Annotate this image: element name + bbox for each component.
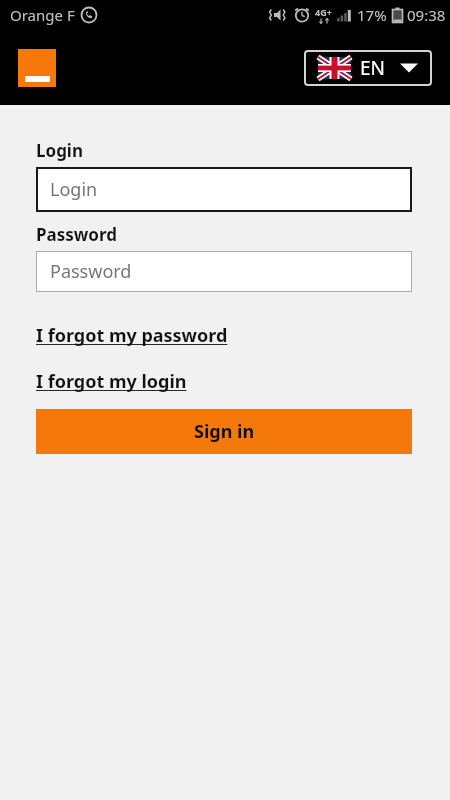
button[interactable]: EN bbox=[304, 50, 432, 86]
staticText: Password bbox=[36, 223, 117, 246]
button[interactable]: Password bbox=[36, 251, 412, 292]
staticText: Orange F bbox=[10, 5, 75, 25]
staticText: Login bbox=[50, 177, 98, 202]
staticText: EN bbox=[360, 55, 386, 81]
staticText: 09:38 bbox=[407, 5, 446, 25]
button[interactable]: I forgot my login bbox=[36, 369, 187, 394]
staticText: Sign in bbox=[194, 419, 255, 444]
staticText: 4G+ bbox=[315, 6, 332, 18]
button[interactable]: Sign in bbox=[36, 409, 412, 454]
staticText: 17% bbox=[357, 5, 387, 25]
staticText: Login bbox=[36, 139, 84, 162]
button[interactable]: Login bbox=[36, 167, 412, 212]
staticText: Password bbox=[50, 259, 132, 284]
button[interactable]: I forgot my password bbox=[36, 323, 228, 348]
